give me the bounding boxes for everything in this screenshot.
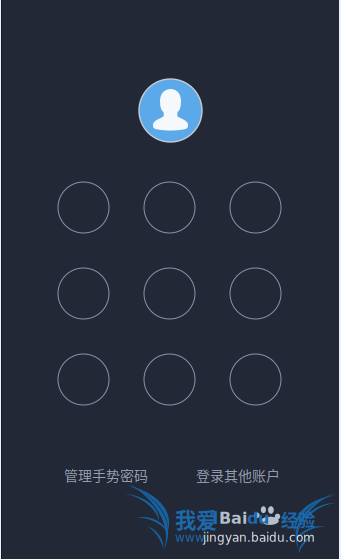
button[interactable]: 管理手势密码: [64, 465, 148, 485]
staticText: I: [212, 508, 218, 528]
staticText: du: [247, 509, 269, 528]
button[interactable]: 登录其他账户: [196, 465, 280, 485]
staticText: 登录其他账户: [196, 465, 280, 485]
staticText: jingyan.baidu.com: [203, 530, 315, 544]
staticText: 管理手势密码: [64, 465, 148, 485]
staticText: www.: [175, 530, 208, 544]
staticText: Bai: [219, 509, 247, 528]
staticText: 经验: [281, 506, 315, 532]
staticText: 我爱: [175, 503, 217, 534]
